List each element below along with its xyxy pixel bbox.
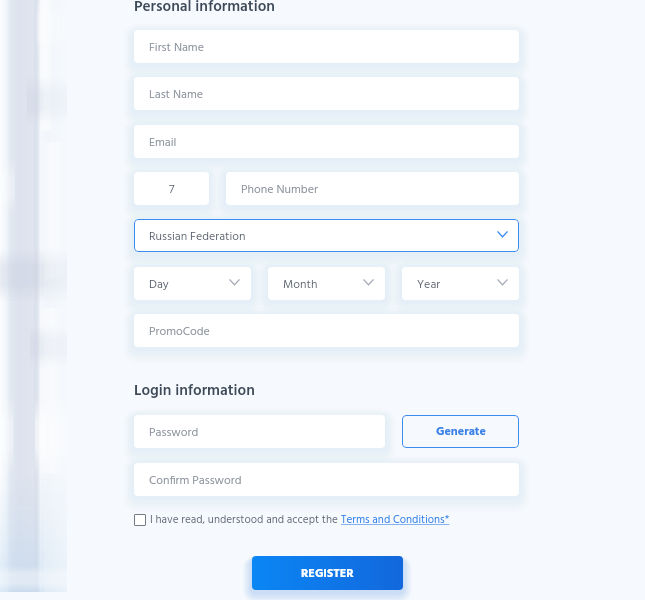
staticText: Phone Number — [241, 180, 318, 199]
staticText: Last Name — [149, 85, 203, 104]
staticText: Password — [149, 423, 199, 442]
staticText: Russian Federation — [149, 227, 246, 246]
button[interactable]: Month — [268, 267, 385, 300]
staticText: First Name — [149, 38, 204, 57]
button[interactable]: First Name — [134, 30, 519, 63]
button[interactable]: Year — [402, 267, 519, 300]
button[interactable]: I have read, understood and accept the — [134, 511, 450, 529]
staticText: Confirm Password — [149, 471, 242, 490]
staticText: PromoCode — [149, 322, 210, 341]
button[interactable]: PromoCode — [134, 314, 519, 347]
button[interactable]: REGISTER — [252, 556, 403, 590]
button[interactable]: Password — [134, 415, 385, 448]
staticText: Month — [283, 275, 318, 294]
staticText: REGISTER — [301, 564, 354, 583]
staticText: Email — [149, 133, 177, 152]
staticText: 7 — [169, 180, 175, 199]
button[interactable]: Phone Number — [226, 172, 519, 205]
button[interactable]: Generate — [402, 415, 519, 448]
staticText: Year — [417, 275, 441, 294]
button[interactable]: Day — [134, 267, 251, 300]
staticText: Personal information — [134, 0, 275, 19]
staticText: I have read, understood and accept the — [150, 511, 341, 529]
button[interactable]: Confirm Password — [134, 463, 519, 496]
staticText: Login information — [134, 379, 255, 403]
staticText: Day — [149, 275, 169, 294]
button[interactable]: Email — [134, 125, 519, 158]
button[interactable]: Russian Federation — [134, 219, 519, 252]
button[interactable]: Last Name — [134, 77, 519, 110]
staticText: Terms and Conditions* — [341, 511, 450, 529]
button[interactable]: 7 — [134, 172, 209, 205]
staticText: Generate — [436, 422, 486, 441]
